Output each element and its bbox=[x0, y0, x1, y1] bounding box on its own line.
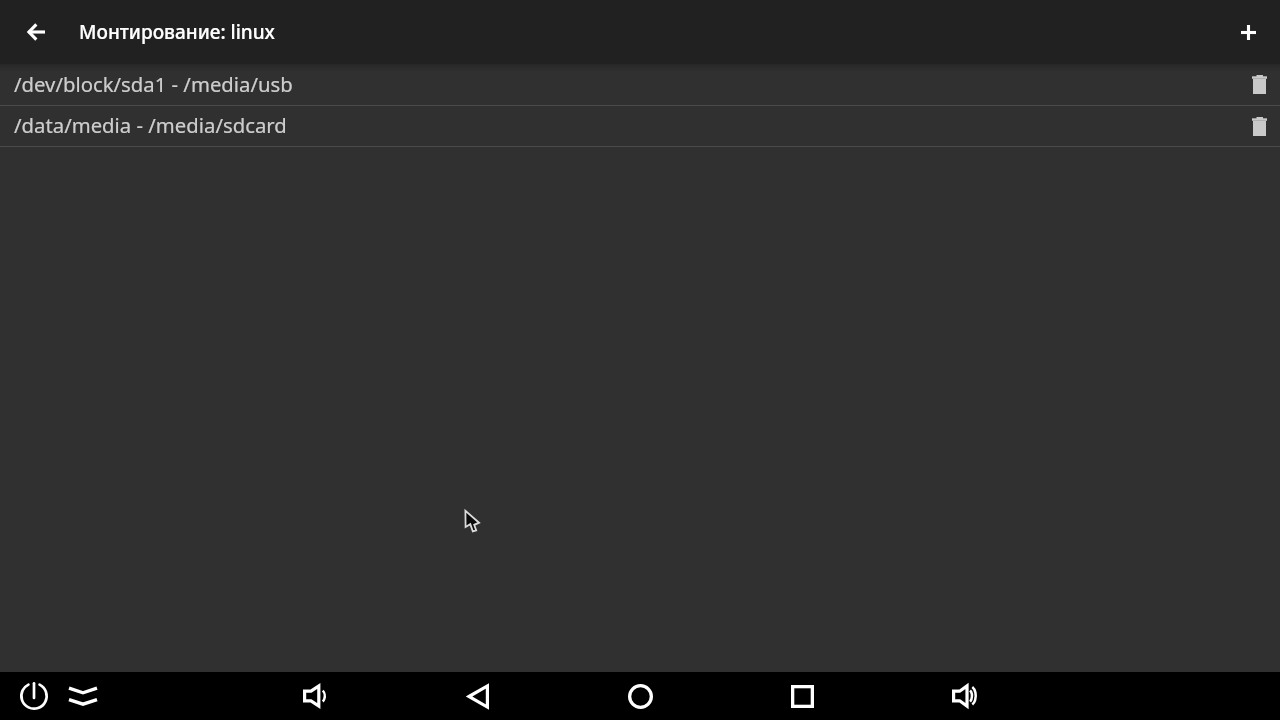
staticText: /dev/block/sda1 - /media/usb bbox=[14, 70, 1239, 98]
button[interactable]: /data/media - /media/sdcard bbox=[0, 106, 1280, 146]
staticText: /data/media - /media/sdcard bbox=[14, 111, 1239, 139]
button[interactable]: Add bbox=[1226, 10, 1270, 54]
button[interactable]: Delete bbox=[1239, 106, 1280, 146]
button[interactable]: Home bbox=[618, 674, 662, 718]
button[interactable]: Delete bbox=[1239, 64, 1280, 105]
button[interactable]: Collapse panel bbox=[61, 674, 105, 718]
button[interactable]: /dev/block/sda1 - /media/usb bbox=[0, 64, 1280, 105]
button[interactable]: Power bbox=[12, 674, 56, 718]
button[interactable]: Volume up bbox=[942, 674, 986, 718]
staticText: Монтирование: linux bbox=[79, 19, 275, 45]
button[interactable]: Back bbox=[14, 10, 58, 54]
button[interactable]: Recents bbox=[780, 674, 824, 718]
button[interactable]: Back bbox=[456, 674, 500, 718]
button[interactable]: Volume down bbox=[292, 674, 336, 718]
